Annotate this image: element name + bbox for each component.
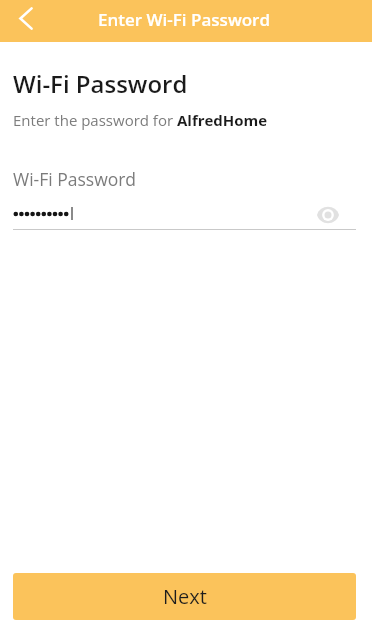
button[interactable]: Show password xyxy=(313,205,343,225)
staticText: Enter Wi-Fi Password xyxy=(0,8,370,31)
button[interactable]: Back xyxy=(0,0,50,42)
staticText: Wi-Fi Password xyxy=(13,167,137,191)
staticText: Wi-Fi Password xyxy=(13,67,188,100)
button[interactable]: Next xyxy=(13,573,356,620)
staticText: Next xyxy=(163,583,207,610)
staticText: Enter the password for AlfredHome xyxy=(13,110,268,130)
button[interactable]: Show password xyxy=(13,204,356,224)
